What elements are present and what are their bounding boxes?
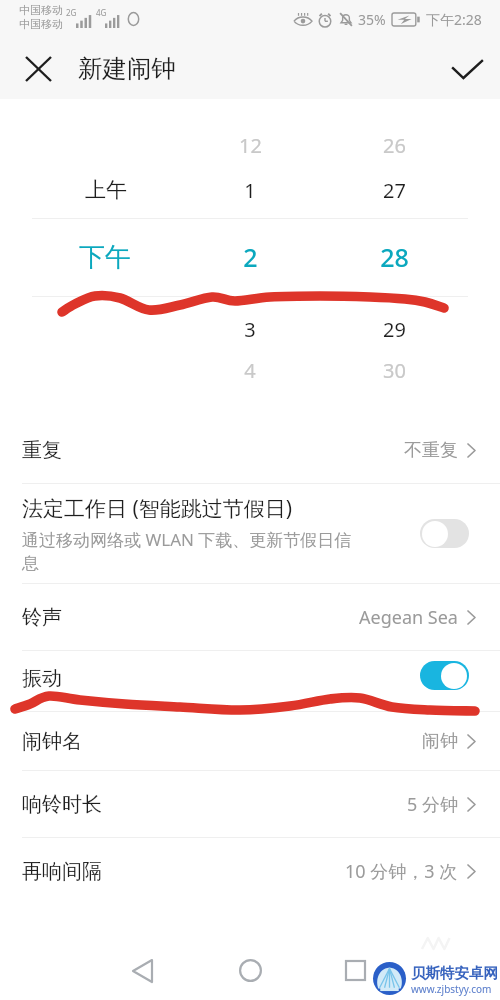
staticText: 再响间隔 xyxy=(22,859,102,884)
button[interactable]: Confirm xyxy=(443,45,491,93)
staticText: 贝斯特安卓网 xyxy=(411,964,498,982)
staticText: 2G xyxy=(66,7,77,18)
button[interactable]: 铃声 xyxy=(0,584,500,650)
staticText: 26 xyxy=(383,132,406,159)
button[interactable]: 重复 xyxy=(0,418,500,483)
staticText: 新建闹钟 xyxy=(78,53,176,84)
staticText: 下午 xyxy=(79,241,131,274)
staticText: 29 xyxy=(383,316,406,343)
staticText: 通过移动网络或 WLAN 下载、更新节假日信 息 xyxy=(22,528,352,574)
staticText: 闹钟 xyxy=(422,730,458,753)
staticText: 振动 xyxy=(22,666,62,691)
staticText: 法定工作日 (智能跳过节假日) xyxy=(22,494,293,523)
button[interactable]: Recents xyxy=(333,948,378,993)
staticText: 上午 xyxy=(85,177,127,203)
button[interactable]: 振动 xyxy=(0,651,500,711)
button[interactable]: Switch off xyxy=(420,519,469,548)
button[interactable]: Back xyxy=(120,948,165,993)
staticText: 中国移动 xyxy=(19,3,63,17)
staticText: www.zjbstyy.com xyxy=(411,982,492,996)
button[interactable]: 再响间隔 xyxy=(0,838,500,905)
staticText: 闹钟名 xyxy=(22,729,82,754)
staticText: 响铃时长 xyxy=(22,792,102,817)
staticText: 2 xyxy=(243,240,258,274)
staticText: 3 xyxy=(244,316,256,343)
staticText: 不重复 xyxy=(404,439,458,462)
staticText: 35% xyxy=(358,10,386,29)
staticText: 27 xyxy=(383,177,406,204)
button[interactable]: Close xyxy=(14,45,62,93)
button[interactable]: 响铃时长 xyxy=(0,771,500,837)
staticText: 4 xyxy=(244,357,256,384)
staticText: 5 分钟 xyxy=(407,792,458,817)
staticText: Aegean Sea xyxy=(359,605,458,630)
button[interactable]: 法定工作日 (智能跳过节假日) xyxy=(0,484,500,583)
button[interactable]: 闹钟名 xyxy=(0,712,500,770)
staticText: 中国移动 xyxy=(19,17,63,31)
button[interactable]: Switch on xyxy=(420,661,469,690)
button[interactable]: Home xyxy=(228,948,273,993)
staticText: 4G xyxy=(96,7,107,18)
staticText: 12 xyxy=(239,132,262,159)
staticText: 28 xyxy=(380,240,409,274)
staticText: 10 分钟，3 次 xyxy=(345,859,458,884)
staticText: 30 xyxy=(383,357,406,384)
staticText: 铃声 xyxy=(22,605,62,630)
staticText: 重复 xyxy=(22,438,62,463)
staticText: 1 xyxy=(244,177,256,204)
staticText: 下午2:28 xyxy=(426,10,482,29)
